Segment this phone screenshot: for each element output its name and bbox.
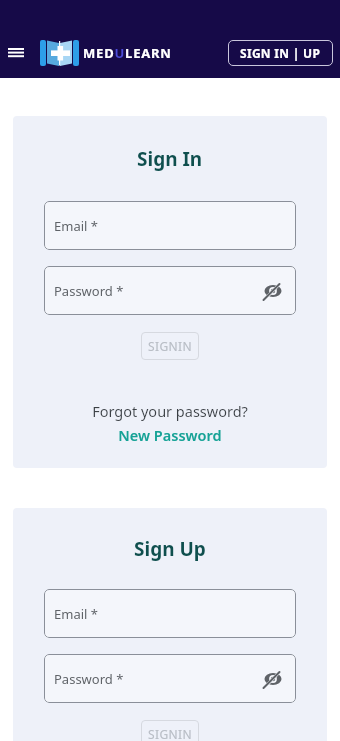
button[interactable]: New Password: [13, 425, 327, 445]
staticText: SIGNIN: [148, 338, 193, 354]
button[interactable]: SIGNIN: [141, 332, 199, 360]
button[interactable]: Email *: [44, 589, 296, 638]
staticText: Sign In: [137, 146, 203, 172]
staticText: Email *: [54, 605, 98, 623]
staticText: SIGNIN: [148, 726, 193, 741]
button[interactable]: SIGN IN | UP: [228, 40, 333, 66]
button[interactable]: Password *: [44, 266, 296, 315]
staticText: Password *: [54, 670, 124, 688]
button[interactable]: Password *: [44, 654, 296, 703]
staticText: Forgot your password?: [13, 401, 327, 421]
button[interactable]: [4, 41, 28, 65]
button[interactable]: Email *: [44, 201, 296, 250]
staticText: MEDULEARN: [83, 44, 172, 62]
staticText: Email *: [54, 217, 98, 235]
staticText: Sign Up: [134, 536, 206, 562]
staticText: Password *: [54, 282, 124, 300]
staticText: SIGN IN | UP: [240, 45, 321, 61]
button[interactable]: SIGNIN: [141, 720, 199, 741]
